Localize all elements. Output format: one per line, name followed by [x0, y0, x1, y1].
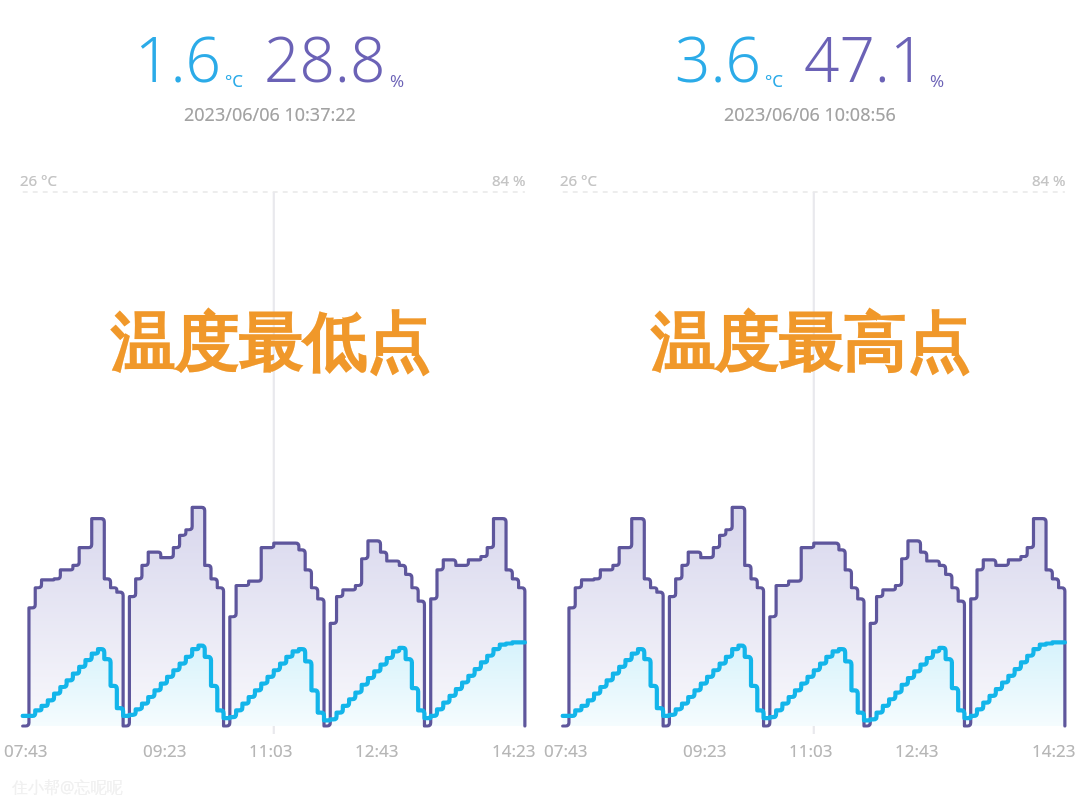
staticText: 14:23 [492, 739, 536, 762]
staticText: 84 % [492, 170, 526, 190]
staticText: 09:23 [683, 739, 727, 762]
staticText: °C [225, 69, 244, 92]
button[interactable]: 3.6 [540, 0, 1080, 127]
staticText: 26 °C [560, 170, 597, 190]
staticText: 2023/06/06 10:08:56 [724, 102, 896, 127]
staticText: 84 % [1032, 170, 1066, 190]
staticText: 26 °C [20, 170, 57, 190]
staticText: 温度最低点 [110, 303, 430, 384]
staticText: 28.8 [264, 16, 386, 100]
button[interactable]: 1.6 [0, 0, 540, 127]
staticText: 12:43 [895, 739, 939, 762]
staticText: 温度最高点 [650, 303, 970, 384]
staticText: 12:43 [355, 739, 399, 762]
staticText: 07:43 [4, 739, 48, 762]
staticText: 1.6 [135, 16, 221, 100]
staticText: % [930, 69, 945, 92]
button[interactable]: 温度最高点 [540, 303, 1080, 384]
button[interactable]: Temperature and humidity chart [0, 0, 540, 810]
staticText: 2023/06/06 10:37:22 [184, 102, 356, 127]
staticText: 11:03 [249, 739, 293, 762]
button[interactable]: Temperature and humidity chart [540, 0, 1080, 810]
staticText: % [390, 69, 405, 92]
staticText: 14:23 [1032, 739, 1076, 762]
staticText: °C [765, 69, 784, 92]
staticText: 07:43 [544, 739, 588, 762]
staticText: 住小帮@忘呢呢 [12, 776, 123, 798]
staticText: 47.1 [804, 16, 926, 100]
staticText: 11:03 [789, 739, 833, 762]
staticText: 3.6 [675, 16, 761, 100]
staticText: 09:23 [143, 739, 187, 762]
button[interactable]: 温度最低点 [0, 303, 540, 384]
